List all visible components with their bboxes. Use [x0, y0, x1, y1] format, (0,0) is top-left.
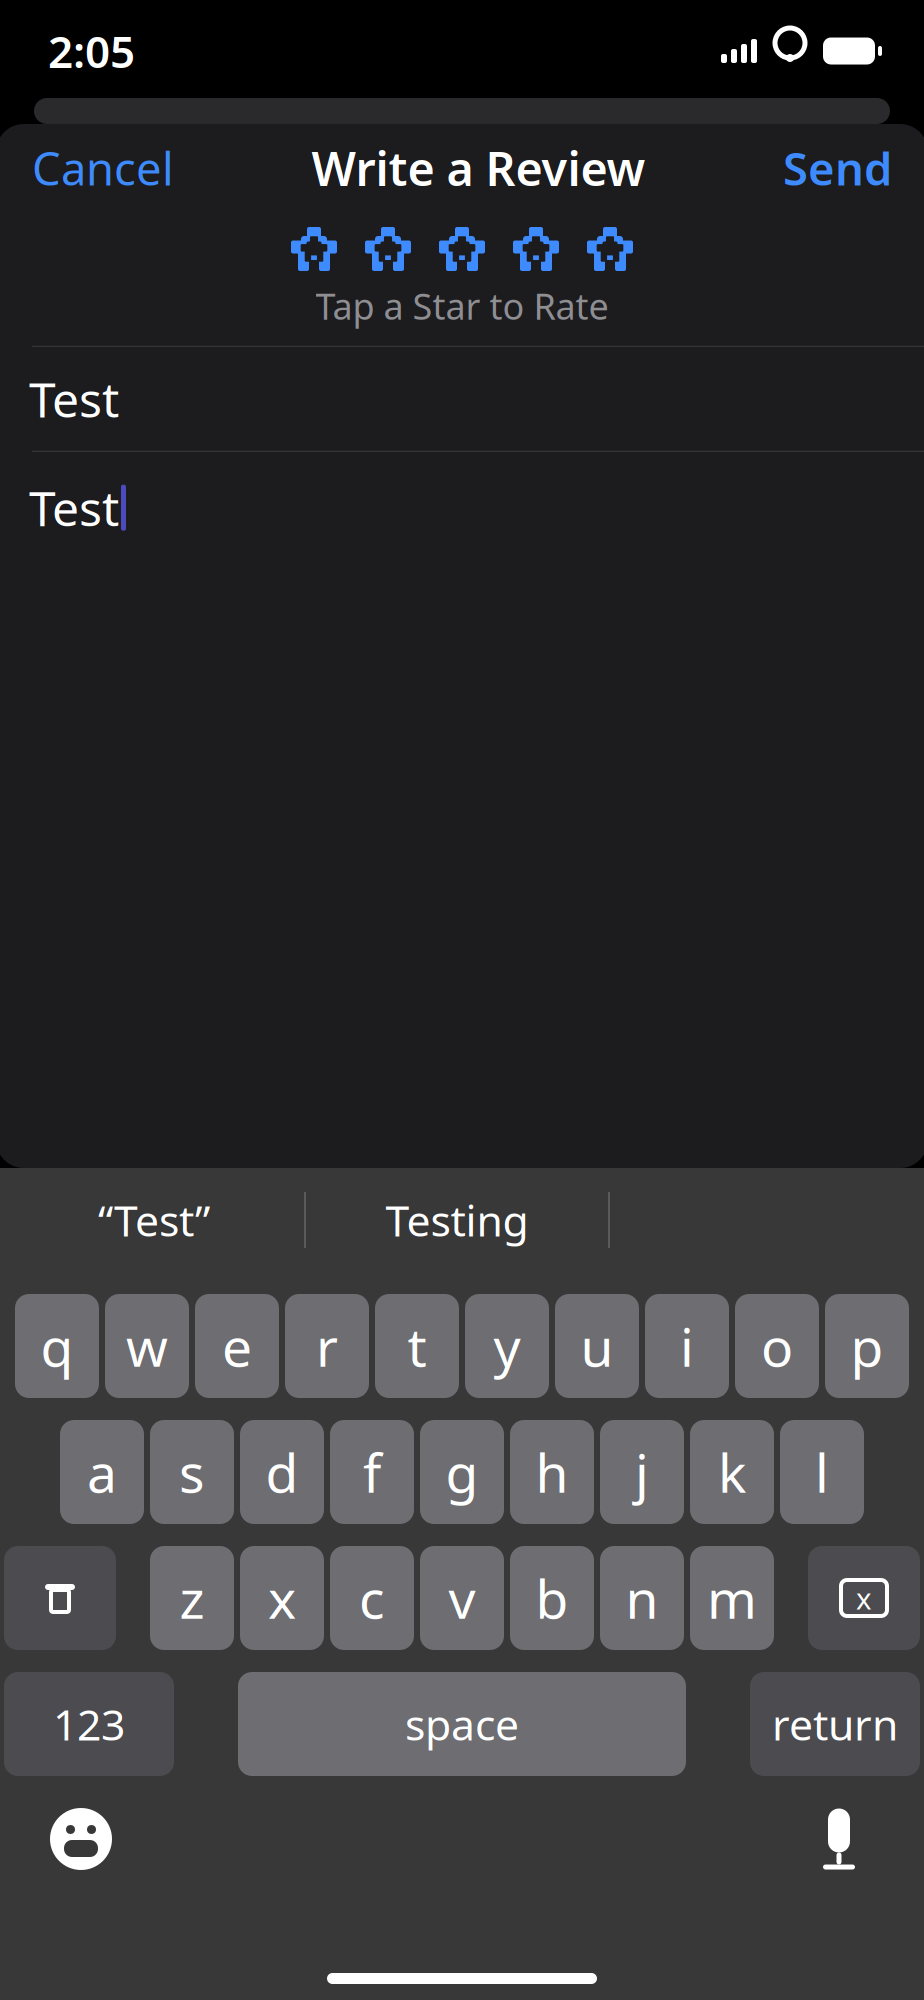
- button[interactable]: Rate 1 star: [290, 226, 338, 272]
- staticText: 123: [53, 1696, 125, 1752]
- button[interactable]: 123: [4, 1672, 174, 1776]
- button[interactable]: f: [330, 1420, 414, 1524]
- button[interactable]: h: [510, 1420, 594, 1524]
- staticText: Write a Review: [311, 137, 645, 199]
- button[interactable]: t: [375, 1294, 459, 1398]
- button[interactable]: g: [420, 1420, 504, 1524]
- button[interactable]: w: [105, 1294, 189, 1398]
- button[interactable]: Test: [0, 452, 924, 810]
- staticText: d: [265, 1437, 298, 1507]
- staticText: j: [635, 1437, 649, 1507]
- staticText: s: [179, 1437, 205, 1507]
- staticText: a: [87, 1437, 117, 1507]
- button[interactable]: d: [240, 1420, 324, 1524]
- button[interactable]: Dictation: [814, 1804, 864, 1874]
- button[interactable]: v: [420, 1546, 504, 1650]
- staticText: w: [126, 1311, 168, 1381]
- staticText: z: [179, 1563, 204, 1633]
- staticText: y: [493, 1311, 520, 1381]
- button[interactable]: Rate 2 stars: [364, 226, 412, 272]
- staticText: return: [772, 1696, 898, 1752]
- button[interactable]: z: [150, 1546, 234, 1650]
- staticText: r: [316, 1311, 338, 1381]
- staticText: space: [405, 1696, 519, 1752]
- staticText: f: [363, 1437, 381, 1507]
- staticText: e: [222, 1311, 252, 1381]
- staticText: q: [40, 1311, 73, 1381]
- button[interactable]: “Test”: [4, 1174, 304, 1266]
- button[interactable]: q: [15, 1294, 99, 1398]
- button[interactable]: Emoji keyboard: [46, 1804, 116, 1874]
- staticText: u: [580, 1311, 613, 1381]
- button[interactable]: o: [735, 1294, 819, 1398]
- staticText: i: [680, 1311, 694, 1381]
- staticText: x: [856, 1578, 872, 1617]
- button[interactable]: u: [555, 1294, 639, 1398]
- button[interactable]: c: [330, 1546, 414, 1650]
- staticText: Cancel: [32, 138, 174, 198]
- button[interactable]: return: [750, 1672, 920, 1776]
- staticText: o: [761, 1311, 793, 1381]
- staticText: 2:05: [48, 22, 135, 80]
- button[interactable]: Send: [773, 126, 902, 210]
- button[interactable]: Rate 4 stars: [512, 226, 560, 272]
- staticText: g: [445, 1437, 478, 1507]
- button[interactable]: Cancel: [22, 126, 184, 210]
- staticText: k: [718, 1437, 746, 1507]
- staticText: p: [850, 1311, 883, 1381]
- button[interactable]: Test: [0, 347, 924, 451]
- button[interactable]: n: [600, 1546, 684, 1650]
- staticText: n: [625, 1563, 658, 1633]
- button[interactable]: l: [780, 1420, 864, 1524]
- staticText: v: [448, 1563, 475, 1633]
- staticText: Tap a Star to Rate: [315, 282, 608, 330]
- button[interactable]: Shift: [4, 1546, 116, 1650]
- button[interactable]: Rate 3 stars: [438, 226, 486, 272]
- staticText: h: [535, 1437, 568, 1507]
- button[interactable]: Delete: [808, 1546, 920, 1650]
- staticText: b: [535, 1563, 568, 1633]
- button[interactable]: x: [240, 1546, 324, 1650]
- button[interactable]: Rate 5 stars: [586, 226, 634, 272]
- button[interactable]: s: [150, 1420, 234, 1524]
- staticText: t: [407, 1311, 426, 1381]
- staticText: x: [268, 1563, 296, 1633]
- staticText: c: [359, 1563, 385, 1633]
- button[interactable]: k: [690, 1420, 774, 1524]
- button[interactable]: j: [600, 1420, 684, 1524]
- button[interactable]: e: [195, 1294, 279, 1398]
- staticText: “Test”: [98, 1192, 210, 1248]
- staticText: Testing: [385, 1192, 528, 1248]
- button[interactable]: a: [60, 1420, 144, 1524]
- button[interactable]: m: [690, 1546, 774, 1650]
- button[interactable]: Testing: [306, 1174, 608, 1266]
- staticText: Send: [783, 138, 892, 198]
- button[interactable]: p: [825, 1294, 909, 1398]
- staticText: m: [707, 1563, 757, 1633]
- button[interactable]: space: [238, 1672, 686, 1776]
- button[interactable]: i: [645, 1294, 729, 1398]
- staticText: Test: [29, 367, 119, 431]
- button[interactable]: b: [510, 1546, 594, 1650]
- staticText: Test: [29, 476, 119, 539]
- button[interactable]: y: [465, 1294, 549, 1398]
- button[interactable]: r: [285, 1294, 369, 1398]
- staticText: l: [815, 1437, 829, 1507]
